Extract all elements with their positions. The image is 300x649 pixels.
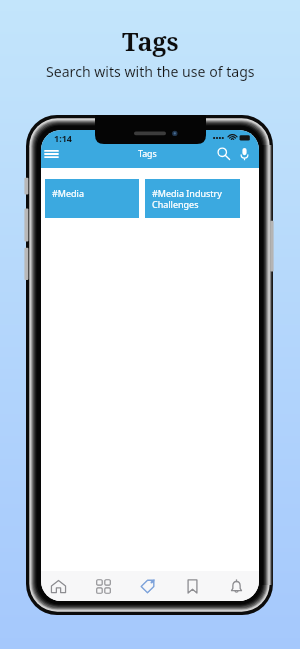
button[interactable]: Open navigation menu	[41, 142, 63, 165]
staticText: Tags	[122, 24, 179, 58]
staticText: #Media	[52, 187, 84, 199]
button[interactable]: Categories	[91, 571, 115, 601]
button[interactable]: #Media Industry Challenges	[145, 179, 240, 218]
button[interactable]: #Media	[45, 179, 139, 218]
button[interactable]: Voice search	[233, 142, 256, 165]
button[interactable]: Search	[212, 142, 235, 165]
button[interactable]: Tags	[135, 571, 159, 601]
staticText: #Media Industry Challenges	[152, 187, 222, 210]
staticText: Tags	[138, 148, 157, 160]
button[interactable]: Bookmarks	[180, 571, 204, 601]
button[interactable]: Home	[46, 571, 70, 601]
staticText: Search wits with the use of tags	[46, 62, 255, 81]
staticText: 1:14	[54, 132, 72, 144]
button[interactable]: Notifications	[224, 571, 248, 601]
